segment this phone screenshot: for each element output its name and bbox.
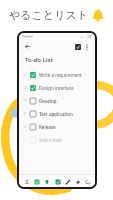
button[interactable]: Erase [73,176,82,187]
staticText: To-do List [25,56,54,64]
button[interactable]: Checked [19,81,95,94]
button[interactable]: Unchecked [29,110,36,117]
button[interactable]: Checked [19,68,95,81]
button[interactable]: Unchecked [19,107,95,120]
button[interactable]: Undo [83,176,92,187]
button[interactable]: Checklist [32,176,41,187]
button[interactable]: Checklist [73,42,82,51]
button[interactable]: Unchecked [19,133,95,146]
staticText: Test application [39,111,73,117]
button[interactable]: Unchecked [29,97,36,104]
staticText: Design interface [39,85,74,91]
button[interactable]: More options [83,43,91,51]
button[interactable]: Checked [29,84,36,91]
button[interactable]: Checked [29,71,36,78]
button[interactable]: Unchecked [19,120,95,133]
button[interactable]: Unchecked [19,94,95,107]
button[interactable]: Unchecked [29,136,36,143]
button[interactable]: Account [22,176,31,187]
button[interactable]: Attach [42,176,51,187]
staticText: Develop [39,98,57,104]
button[interactable]: Tasks [53,176,62,187]
button[interactable]: Back [23,42,32,51]
staticText: やることリスト [9,8,88,22]
staticText: Add a task [39,137,62,143]
button[interactable]: Unchecked [29,123,36,130]
staticText: Release [39,124,56,130]
staticText: Write a requirement [39,72,82,78]
button[interactable]: Draw [63,176,72,187]
